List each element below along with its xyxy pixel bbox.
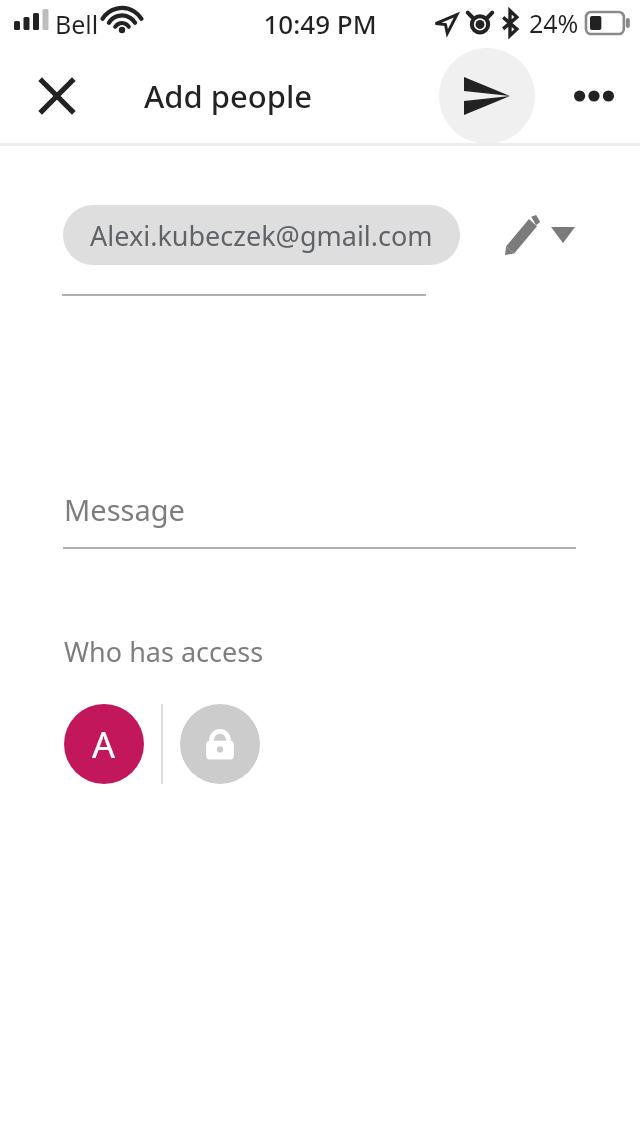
- button[interactable]: Alexi.kubeczek@gmail.com: [63, 205, 460, 265]
- staticText: Message: [64, 490, 185, 529]
- button[interactable]: Send: [439, 48, 535, 144]
- button[interactable]: Change permission: [498, 204, 575, 266]
- staticText: A: [92, 720, 116, 769]
- button[interactable]: More options: [560, 62, 628, 130]
- staticText: Bell: [55, 7, 99, 41]
- button[interactable]: A: [64, 704, 144, 784]
- staticText: Add people: [144, 75, 313, 117]
- staticText: Alexi.kubeczek@gmail.com: [90, 217, 433, 254]
- staticText: 24%: [529, 6, 579, 40]
- staticText: Who has access: [64, 633, 264, 670]
- staticText: 10:49 PM: [0, 6, 640, 41]
- button[interactable]: Close: [22, 61, 92, 131]
- button[interactable]: Private: [180, 704, 260, 784]
